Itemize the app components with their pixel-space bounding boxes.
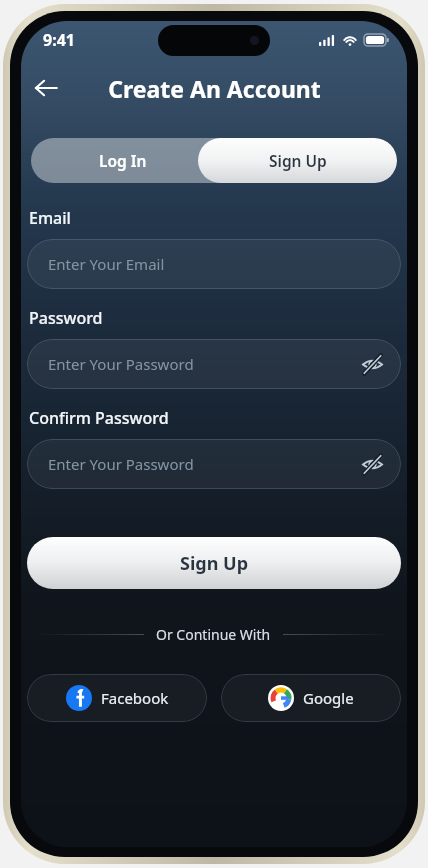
staticText: Sign Up [180,551,249,576]
button[interactable]: Sign Up [198,138,397,183]
staticText: Create An Account [108,73,321,104]
button[interactable]: Toggle password visibility [355,347,389,381]
staticText: Log In [99,150,147,171]
button[interactable]: Enter Your Password [27,439,401,489]
button[interactable]: Google [221,674,401,722]
button[interactable]: Log In [31,138,214,183]
button[interactable]: Sign Up [27,537,401,589]
button[interactable]: Facebook [27,674,207,722]
staticText: Sign Up [269,150,327,171]
staticText: Email [29,207,71,229]
staticText: Google [303,688,354,708]
button[interactable]: Enter Your Password [27,339,401,389]
staticText: Password [29,307,103,329]
button[interactable]: Toggle password visibility [355,447,389,481]
staticText: Or Continue With [156,625,271,644]
staticText: Enter Your Email [48,254,165,274]
staticText: 9:41 [43,29,75,51]
staticText: Confirm Password [29,407,169,429]
staticText: Enter Your Password [48,354,194,374]
staticText: Enter Your Password [48,454,194,474]
staticText: Facebook [101,688,169,708]
button[interactable]: Back [23,65,69,111]
button[interactable]: Enter Your Email [27,239,401,289]
